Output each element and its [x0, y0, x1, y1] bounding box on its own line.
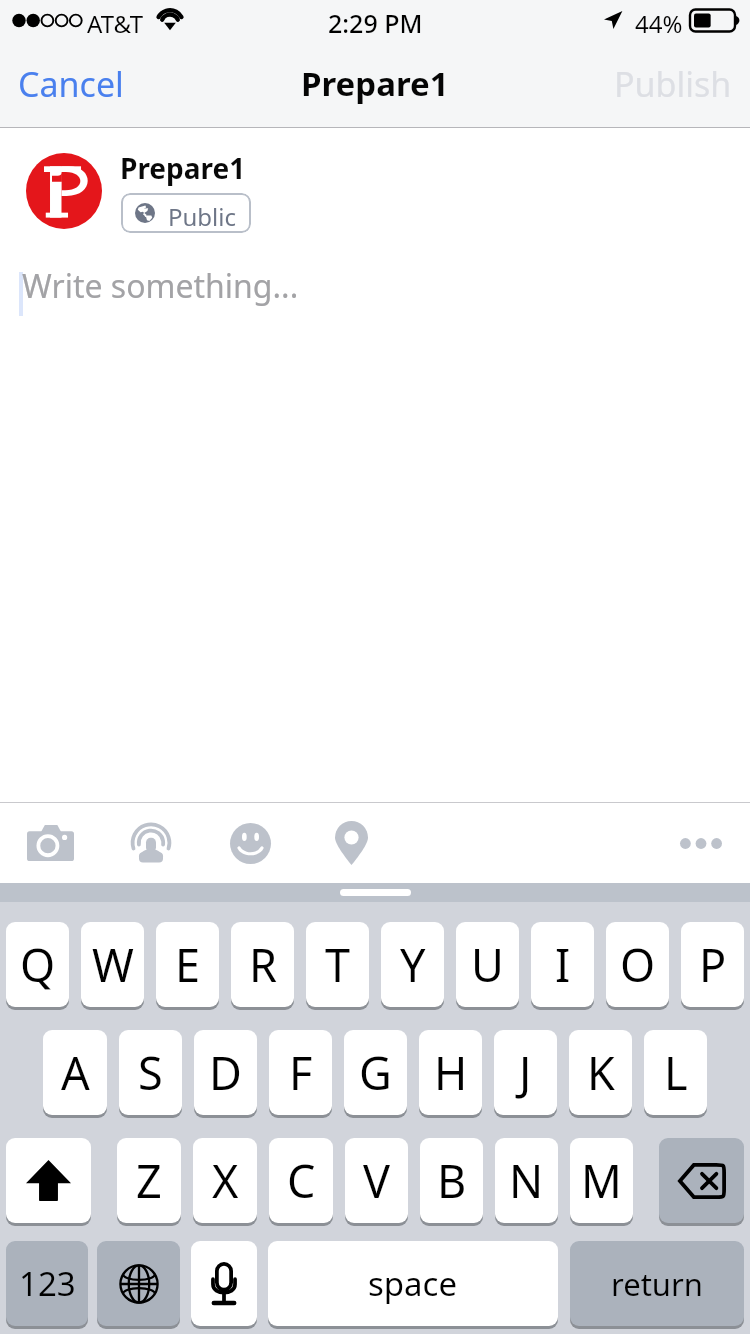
- button[interactable]: Feeling: [222, 811, 278, 875]
- button[interactable]: G: [344, 1030, 407, 1115]
- button[interactable]: Check in: [328, 811, 374, 875]
- staticText: S: [138, 1042, 163, 1103]
- button[interactable]: H: [419, 1030, 482, 1115]
- button[interactable]: T: [306, 922, 369, 1007]
- staticText: Cancel: [18, 61, 124, 107]
- button[interactable]: return: [570, 1241, 744, 1326]
- button[interactable]: Publish: [600, 53, 746, 115]
- button[interactable]: Shift: [6, 1138, 91, 1223]
- button[interactable]: W: [81, 922, 144, 1007]
- button[interactable]: F: [269, 1030, 332, 1115]
- staticText: AT&T: [87, 7, 143, 40]
- button[interactable]: Next keyboard: [97, 1241, 180, 1326]
- staticText: N: [509, 1150, 544, 1211]
- staticText: Public: [168, 200, 237, 233]
- staticText: M: [581, 1150, 622, 1211]
- staticText: X: [212, 1150, 239, 1211]
- staticText: Publish: [614, 61, 732, 107]
- staticText: I: [555, 934, 571, 995]
- button[interactable]: space: [268, 1241, 558, 1326]
- button[interactable]: J: [494, 1030, 557, 1115]
- button[interactable]: Public: [121, 193, 251, 233]
- staticText: Write something...: [22, 264, 299, 308]
- staticText: A: [61, 1042, 90, 1103]
- staticText: P: [699, 934, 727, 995]
- staticText: 2:29 PM: [328, 6, 423, 40]
- staticText: E: [175, 934, 201, 995]
- staticText: Q: [20, 934, 56, 995]
- button[interactable]: 123: [6, 1241, 88, 1326]
- staticText: O: [620, 934, 656, 995]
- button[interactable]: Hide keyboard: [340, 889, 411, 896]
- staticText: H: [434, 1042, 468, 1103]
- button[interactable]: S: [119, 1030, 182, 1115]
- staticText: J: [519, 1042, 532, 1103]
- staticText: C: [287, 1150, 316, 1211]
- staticText: Prepare1: [120, 149, 246, 187]
- staticText: D: [209, 1042, 242, 1103]
- button[interactable]: A: [43, 1030, 107, 1115]
- button[interactable]: X: [193, 1138, 257, 1223]
- staticText: Prepare1: [301, 61, 449, 106]
- staticText: 44%: [635, 7, 683, 40]
- button[interactable]: D: [194, 1030, 257, 1115]
- staticText: space: [368, 1261, 458, 1306]
- button[interactable]: Backspace: [659, 1138, 744, 1223]
- staticText: R: [249, 934, 277, 995]
- button[interactable]: O: [606, 922, 669, 1007]
- staticText: U: [471, 934, 504, 995]
- button[interactable]: C: [269, 1138, 333, 1223]
- button[interactable]: M: [570, 1138, 633, 1223]
- staticText: F: [289, 1042, 313, 1103]
- button[interactable]: More options: [666, 814, 736, 872]
- button[interactable]: V: [345, 1138, 408, 1223]
- button[interactable]: Dictate: [191, 1241, 257, 1326]
- staticText: G: [359, 1042, 392, 1103]
- button[interactable]: Q: [6, 922, 69, 1007]
- staticText: K: [587, 1042, 615, 1103]
- button[interactable]: K: [569, 1030, 632, 1115]
- button[interactable]: Cancel: [4, 53, 138, 115]
- button[interactable]: Photo: [6, 814, 94, 872]
- button[interactable]: E: [156, 922, 219, 1007]
- button[interactable]: B: [420, 1138, 483, 1223]
- staticText: T: [325, 934, 351, 995]
- button[interactable]: R: [231, 922, 294, 1007]
- staticText: W: [92, 934, 134, 995]
- staticText: Z: [136, 1150, 162, 1211]
- button[interactable]: Y: [381, 922, 444, 1007]
- staticText: L: [664, 1042, 688, 1103]
- staticText: B: [437, 1150, 467, 1211]
- button[interactable]: I: [531, 922, 594, 1007]
- button[interactable]: U: [456, 922, 519, 1007]
- button[interactable]: Live video: [118, 811, 184, 875]
- button[interactable]: Z: [117, 1138, 181, 1223]
- staticText: 123: [19, 1261, 76, 1306]
- staticText: Y: [400, 934, 426, 995]
- button[interactable]: P: [681, 922, 744, 1007]
- button[interactable]: Profile picture: [26, 153, 102, 229]
- button[interactable]: L: [644, 1030, 707, 1115]
- button[interactable]: N: [495, 1138, 558, 1223]
- staticText: V: [363, 1150, 391, 1211]
- staticText: return: [611, 1263, 703, 1305]
